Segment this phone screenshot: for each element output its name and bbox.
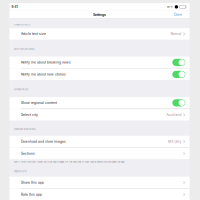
staticText: Auckland [166,113,181,117]
button[interactable]: Select city [9,109,189,121]
staticText: Normal [170,32,181,36]
staticText: Share this app [21,181,44,184]
staticText: Settings [93,12,106,17]
staticText: Notify me about breaking news [21,60,71,64]
staticText: Wifi Only [167,140,181,143]
staticText: Select city [21,113,38,117]
staticText: OFFLINE READING [14,128,36,130]
button[interactable]: Article text size [9,28,189,40]
staticText: Notify me about new stories [21,72,66,76]
staticText: We'll store the most recent articles and… [14,161,125,163]
button[interactable]: Download and store images [9,136,189,147]
button[interactable]: Done [169,11,189,19]
button[interactable]: Share this app [9,177,189,188]
button[interactable]: Notify me about new stories [9,69,189,80]
staticText: Show regional content [21,101,57,105]
staticText: Download and store images [21,140,66,143]
button[interactable]: Show regional content [9,97,189,109]
staticText: NOTIFICATIONS [14,48,34,51]
staticText: FEEDBACK [14,170,27,173]
staticText: HOME PAGE [14,88,28,91]
button[interactable]: Notify me about breaking news [9,57,189,68]
button[interactable]: Rate this app [9,189,189,200]
staticText: Rate this app [21,193,42,196]
staticText: Sections [21,152,35,155]
staticText: APPEARANCE [14,23,30,26]
button[interactable]: Sections [9,148,189,159]
staticText: Wi-Fi [167,5,173,8]
staticText: Article text size [21,32,46,36]
staticText: 9:41 [11,5,17,9]
staticText: Done [174,13,182,17]
